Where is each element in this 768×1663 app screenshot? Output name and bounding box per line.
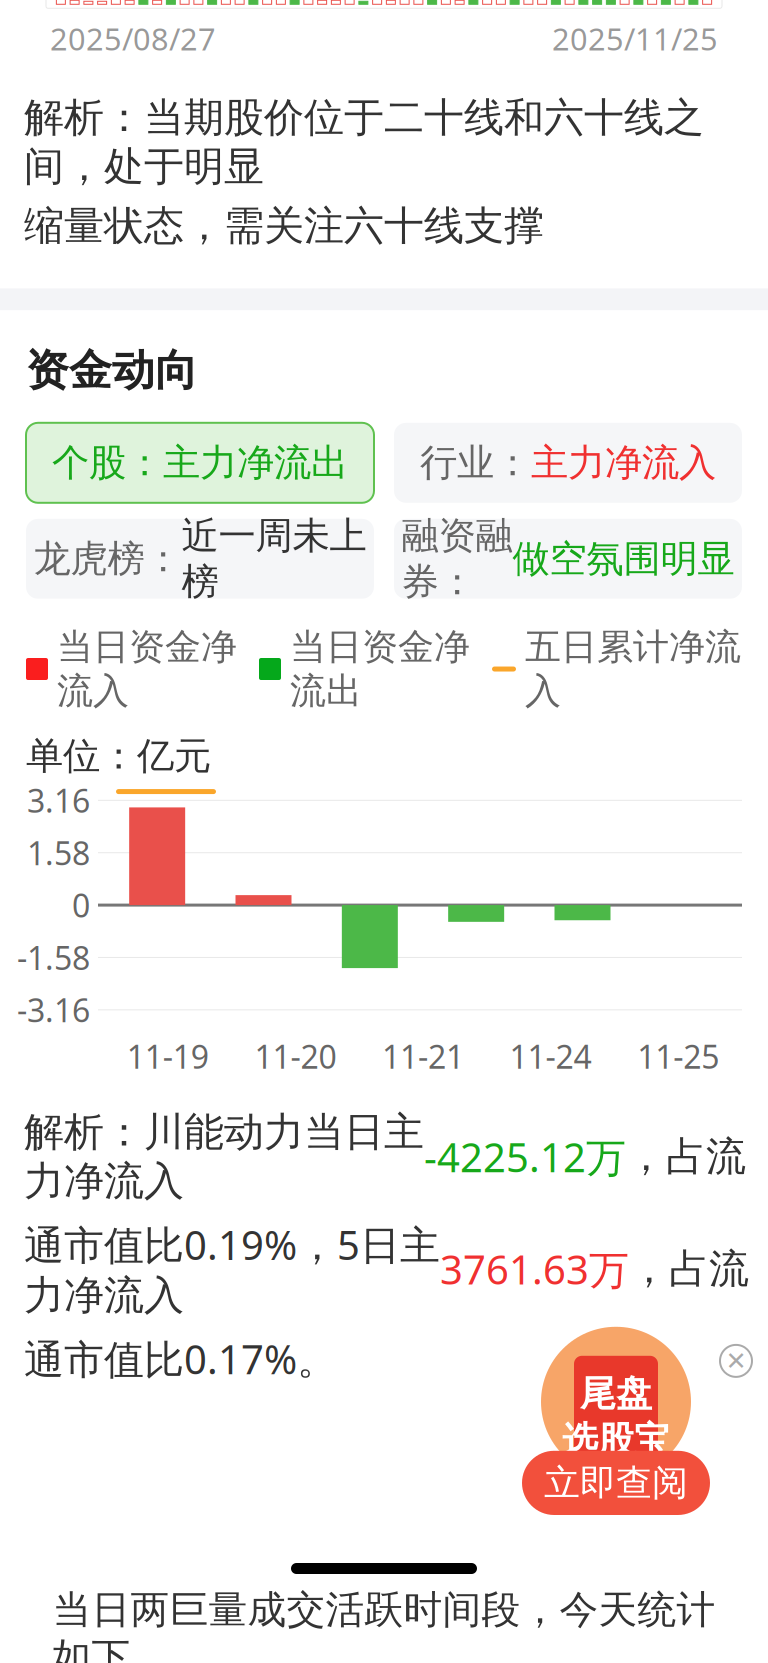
button[interactable]: 尾盘选股宝 立即查阅 [522, 1327, 710, 1515]
staticText: -3.16 [17, 989, 90, 1031]
staticText: 当日资金净流入 [57, 625, 237, 713]
staticText: -4225.12万 [424, 1130, 626, 1183]
button[interactable]: 行业： [394, 423, 742, 503]
staticText: 近一周未上榜 [181, 513, 366, 605]
staticText: 11-25 [637, 1035, 719, 1078]
staticText: 做空氛围明显 [512, 536, 734, 582]
staticText: 当日资金净流出 [290, 625, 470, 713]
staticText: 11-21 [382, 1035, 464, 1078]
staticText: 解析：当期股价位于二十线和六十线之间，处于明显 [24, 93, 704, 191]
staticText: 3761.63万 [440, 1242, 629, 1295]
staticText: ，占流 [626, 1132, 746, 1181]
button[interactable]: 个股： [26, 423, 374, 503]
staticText: 单位：亿元 [26, 733, 211, 779]
staticText: 选股宝 [562, 1418, 670, 1462]
staticText: 2025/08/27 [50, 18, 216, 59]
staticText: 3.16 [27, 779, 90, 822]
staticText: 11-20 [254, 1035, 336, 1078]
staticText: ，占流 [629, 1244, 749, 1293]
staticText: 主力净流出 [163, 440, 348, 486]
staticText: 龙虎榜： [33, 536, 181, 582]
staticText: 通市值比0.17%。 [24, 1332, 337, 1385]
staticText: 缩量状态，需关注六十线支撑 [24, 201, 544, 250]
button[interactable]: 龙虎榜： [26, 519, 374, 599]
staticText: 立即查阅 [544, 1461, 688, 1505]
staticText: 通市值比0.19%，5日主力净流入 [24, 1218, 440, 1320]
staticText: 个股： [52, 440, 163, 486]
staticText: 当日两巨量成交活跃时间段，今天统计如下 [52, 1586, 715, 1663]
staticText: 11-19 [127, 1035, 209, 1078]
staticText: 2025/11/25 [552, 18, 718, 59]
staticText: 行业： [420, 440, 531, 486]
staticText: 0 [72, 884, 90, 926]
staticText: ✕ [725, 1346, 746, 1375]
button[interactable]: Close ad [712, 1337, 760, 1385]
button[interactable]: 融资融券： [394, 519, 742, 599]
staticText: -1.58 [17, 936, 90, 979]
staticText: 五日累计净流入 [525, 625, 741, 713]
staticText: 融资融券： [401, 513, 512, 605]
staticText: 1.58 [27, 831, 90, 874]
staticText: 11-24 [510, 1035, 592, 1078]
staticText: 资金动向 [26, 344, 198, 397]
staticText: 解析：川能动力当日主力净流入 [24, 1108, 424, 1206]
staticText: 尾盘 [580, 1372, 652, 1416]
staticText: 主力净流入 [531, 440, 716, 486]
